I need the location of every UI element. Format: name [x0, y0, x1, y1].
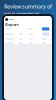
staticText: Report: [5, 22, 19, 27]
staticText: on the last week: [8, 17, 47, 24]
staticText: Review summary of your expenses: [4, 3, 52, 17]
button[interactable]: Add entry: [42, 27, 49, 30]
